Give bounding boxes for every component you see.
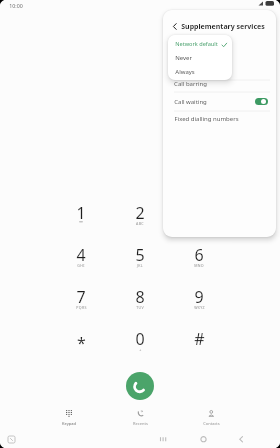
staticText: GHI xyxy=(77,263,85,268)
staticText: # xyxy=(194,328,205,348)
button[interactable] xyxy=(232,431,250,447)
button[interactable]: * xyxy=(57,332,105,362)
staticText: Supplementary services xyxy=(181,22,265,32)
button[interactable] xyxy=(168,19,182,34)
staticText: Never xyxy=(175,54,192,62)
button[interactable]: Keypad xyxy=(53,408,85,427)
button[interactable]: 0 xyxy=(116,328,164,358)
button[interactable]: # xyxy=(175,328,223,358)
button[interactable] xyxy=(154,431,172,447)
button[interactable] xyxy=(194,431,212,447)
button[interactable]: 2 xyxy=(116,202,164,232)
button[interactable]: 9 xyxy=(175,286,223,316)
staticText: 0 xyxy=(135,328,145,348)
button[interactable]: 5 xyxy=(116,244,164,274)
staticText: 8 xyxy=(135,286,145,306)
staticText: ABC xyxy=(136,221,144,226)
button[interactable]: Always xyxy=(168,65,232,79)
staticText: 5 xyxy=(135,244,145,264)
staticText: 10:00 xyxy=(9,2,23,9)
staticText: Always xyxy=(175,68,195,76)
staticText: PQRS xyxy=(76,305,87,310)
button[interactable]: Call waiting xyxy=(163,92,276,111)
staticText: Network default xyxy=(175,40,218,48)
button[interactable]: 6 xyxy=(175,244,223,274)
staticText: 2 xyxy=(135,202,145,222)
button[interactable]: Never xyxy=(168,51,232,65)
staticText: 6 xyxy=(194,244,204,264)
button[interactable]: 1 xyxy=(57,202,105,232)
button[interactable]: Network default xyxy=(168,37,232,51)
staticText: Keypad xyxy=(62,421,76,426)
button[interactable]: Fixed dialling numbers xyxy=(163,111,276,127)
staticText: 4 xyxy=(76,244,86,264)
staticText: WXYZ xyxy=(194,305,205,310)
staticText: Fixed dialling numbers xyxy=(174,115,239,123)
button[interactable]: Recents xyxy=(124,408,156,427)
staticText: 1 xyxy=(76,202,86,222)
staticText: JKL xyxy=(137,263,143,268)
button[interactable]: 8 xyxy=(116,286,164,316)
staticText: Call barring xyxy=(174,80,207,88)
staticText: + xyxy=(139,347,142,352)
staticText: 9 xyxy=(194,286,204,306)
staticText: Recents xyxy=(133,421,148,426)
staticText: TUV xyxy=(136,305,144,310)
staticText: MNO xyxy=(194,263,204,268)
button[interactable] xyxy=(126,372,154,400)
staticText: 7 xyxy=(76,286,86,306)
button[interactable]: Contacts xyxy=(195,408,227,427)
button[interactable]: 4 xyxy=(57,244,105,274)
button[interactable]: Call barring xyxy=(163,76,276,92)
staticText: Contacts xyxy=(203,421,220,426)
button[interactable] xyxy=(4,431,20,447)
button[interactable]: 7 xyxy=(57,286,105,316)
staticText: * xyxy=(77,332,86,352)
staticText: Call waiting xyxy=(174,98,207,106)
